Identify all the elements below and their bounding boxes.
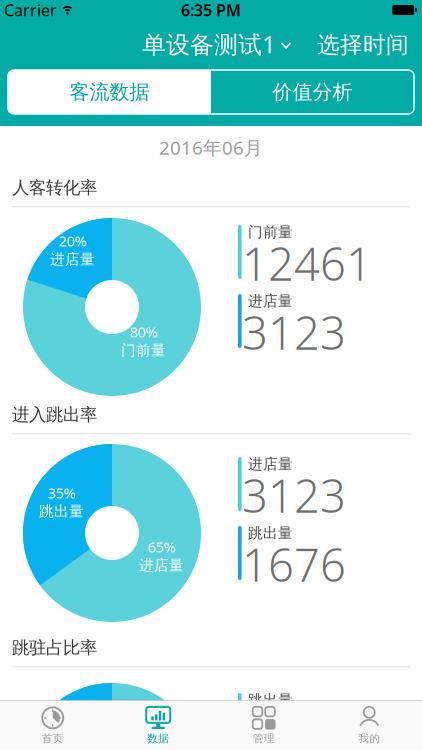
staticText: 35% [47, 483, 75, 502]
staticText: 数据 [147, 732, 169, 745]
staticText: 进店量 [248, 455, 293, 473]
staticText: 门前量 [121, 341, 166, 359]
staticText: 跳出量 [248, 524, 293, 542]
staticText: 进店量 [139, 556, 184, 574]
staticText: 进店量 [50, 250, 95, 268]
staticText: 门前量 [248, 223, 293, 241]
button[interactable]: 价值分析 [211, 70, 414, 114]
staticText: 65% [147, 537, 175, 556]
button[interactable]: 客流数据 [8, 70, 211, 114]
staticText: 跳出量 [39, 502, 84, 520]
staticText: 6:35 PM [181, 0, 241, 21]
staticText: 单设备测试1 [142, 28, 276, 60]
staticText: Carrier [4, 0, 57, 21]
staticText: 进店量 [248, 292, 293, 310]
staticText: 客流数据 [69, 80, 149, 104]
staticText: 价值分析 [272, 80, 352, 104]
button[interactable]: 选择时间 [317, 31, 409, 59]
button[interactable]: 我的 [316, 701, 422, 750]
staticText: 3123 [242, 302, 346, 362]
button[interactable]: 首页 [0, 701, 105, 750]
staticText: 选择时间 [317, 31, 409, 59]
staticText: 跳出量 [248, 691, 293, 709]
staticText: 3123 [242, 465, 346, 525]
staticText: 人客转化率 [12, 177, 97, 198]
staticText: 1676 [242, 534, 346, 594]
staticText: 进入跳出率 [12, 404, 97, 425]
staticText: 2016年06月 [159, 135, 263, 160]
staticText: 80% [129, 322, 157, 341]
staticText: 管理 [253, 732, 275, 745]
staticText: 跳驻占比率 [12, 637, 97, 658]
button[interactable]: 管理 [211, 701, 316, 750]
staticText: 首页 [42, 732, 64, 745]
staticText: 我的 [358, 732, 380, 745]
button[interactable]: 数据 [105, 701, 211, 750]
staticText: 20% [58, 231, 86, 250]
button[interactable]: 单设备测试1 [142, 28, 291, 60]
staticText: 12461 [242, 233, 372, 293]
staticText: 2384 [242, 701, 346, 750]
